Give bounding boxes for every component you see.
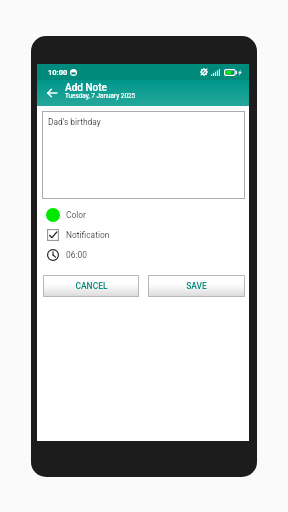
staticText: Add Note bbox=[65, 82, 107, 94]
button[interactable]: CANCEL bbox=[43, 275, 139, 297]
staticText: Notification bbox=[66, 230, 110, 240]
staticText: 06:00 bbox=[66, 250, 87, 260]
staticText: 10:00 bbox=[48, 68, 68, 77]
staticText: CANCEL bbox=[75, 281, 108, 291]
button[interactable]: SAVE bbox=[148, 275, 245, 297]
staticText: SAVE bbox=[186, 281, 207, 291]
staticText: Tuesday, 7 January 2025 bbox=[65, 92, 136, 100]
staticText: Color bbox=[66, 210, 86, 220]
button[interactable]: Dad's birthday bbox=[42, 111, 245, 199]
staticText: Dad's birthday bbox=[48, 117, 101, 127]
button[interactable]: Back bbox=[42, 84, 61, 102]
button[interactable]: Notification bbox=[37, 227, 249, 243]
button[interactable]: 06:00 bbox=[37, 247, 249, 263]
button[interactable]: Color bbox=[37, 207, 249, 223]
